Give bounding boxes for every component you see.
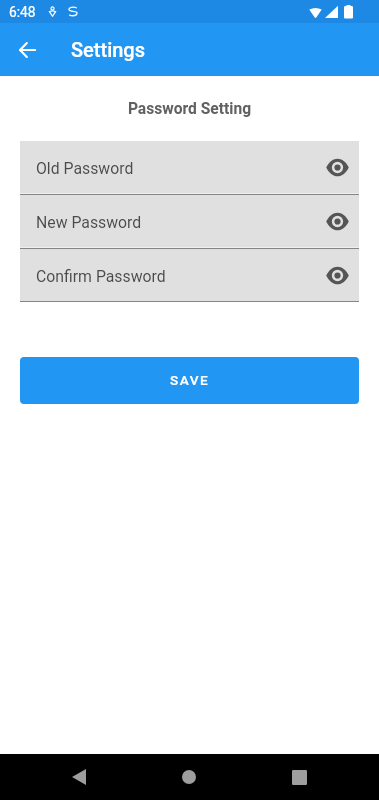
staticText: Password Setting	[0, 100, 379, 118]
button[interactable]: Back	[56, 754, 102, 800]
button[interactable]: Toggle password visibility	[320, 258, 354, 292]
staticText: 6:48	[9, 4, 36, 20]
button[interactable]: Toggle password visibility	[320, 150, 354, 184]
staticText: SAVE	[170, 372, 210, 388]
button[interactable]: Old Password	[20, 141, 359, 193]
button[interactable]: Back	[0, 23, 54, 76]
button[interactable]: New Password	[20, 195, 359, 247]
button[interactable]: Home	[166, 754, 212, 800]
staticText: New Password	[36, 213, 142, 232]
button[interactable]: SAVE	[20, 357, 359, 404]
button[interactable]: Confirm Password	[20, 249, 359, 301]
staticText: Confirm Password	[36, 267, 166, 286]
button[interactable]: Toggle password visibility	[320, 204, 354, 238]
staticText: Settings	[71, 38, 146, 61]
staticText: Old Password	[36, 159, 134, 178]
button[interactable]: Recents	[276, 754, 322, 800]
